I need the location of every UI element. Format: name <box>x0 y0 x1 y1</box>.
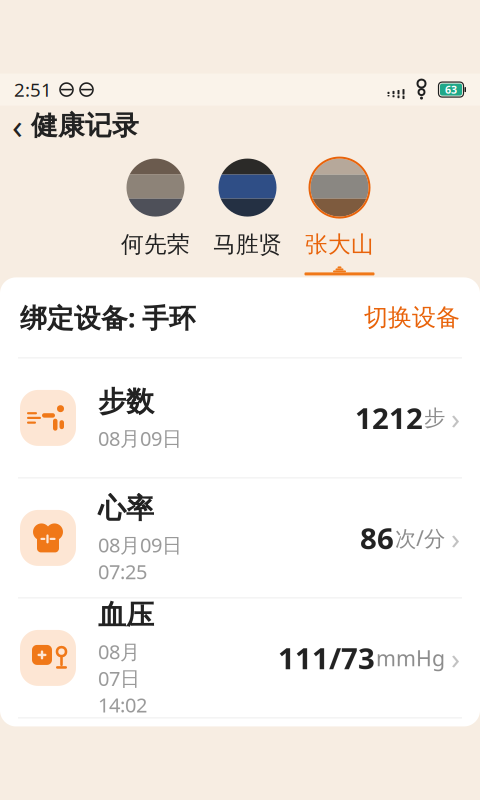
staticText: 08月09日 07:25 <box>98 532 182 585</box>
staticText: 1212 <box>355 398 423 437</box>
staticText: 绑定设备: 手环 <box>20 300 196 335</box>
staticText: 健康记录 <box>31 109 139 142</box>
staticText: 何先荣 <box>121 231 190 258</box>
staticText: 血压 <box>98 598 154 632</box>
staticText: 马胜贤 <box>213 231 282 258</box>
staticText: 次/分 <box>395 524 445 552</box>
button[interactable]: 步数 <box>0 358 480 477</box>
button[interactable]: 心率 <box>0 478 480 597</box>
staticText: 2:51 <box>14 77 52 102</box>
staticText: 86 <box>360 518 394 557</box>
staticText: › <box>451 518 460 557</box>
button[interactable]: ‹ <box>0 106 151 146</box>
staticText: ‹ <box>12 103 23 149</box>
staticText: › <box>451 398 460 437</box>
staticText: 08月09日 <box>98 425 182 451</box>
staticText: 切换设备 <box>364 303 460 332</box>
button[interactable]: 血压 <box>0 598 480 717</box>
button[interactable]: 切换设备 <box>354 297 460 338</box>
staticText: 63 <box>445 82 457 97</box>
staticText: 心率 <box>98 491 154 526</box>
staticText: 111/73 <box>278 638 375 677</box>
button[interactable]: 张大山 <box>293 156 385 275</box>
button[interactable]: 何先荣 <box>109 156 201 275</box>
staticText: 张大山 <box>305 231 374 258</box>
staticText: 08月07日 14:02 <box>98 638 147 718</box>
staticText: › <box>451 638 460 677</box>
staticText: 步 <box>424 405 445 431</box>
staticText: 步数 <box>98 384 154 419</box>
staticText: mmHg <box>376 644 445 672</box>
button[interactable]: 马胜贤 <box>201 156 293 275</box>
